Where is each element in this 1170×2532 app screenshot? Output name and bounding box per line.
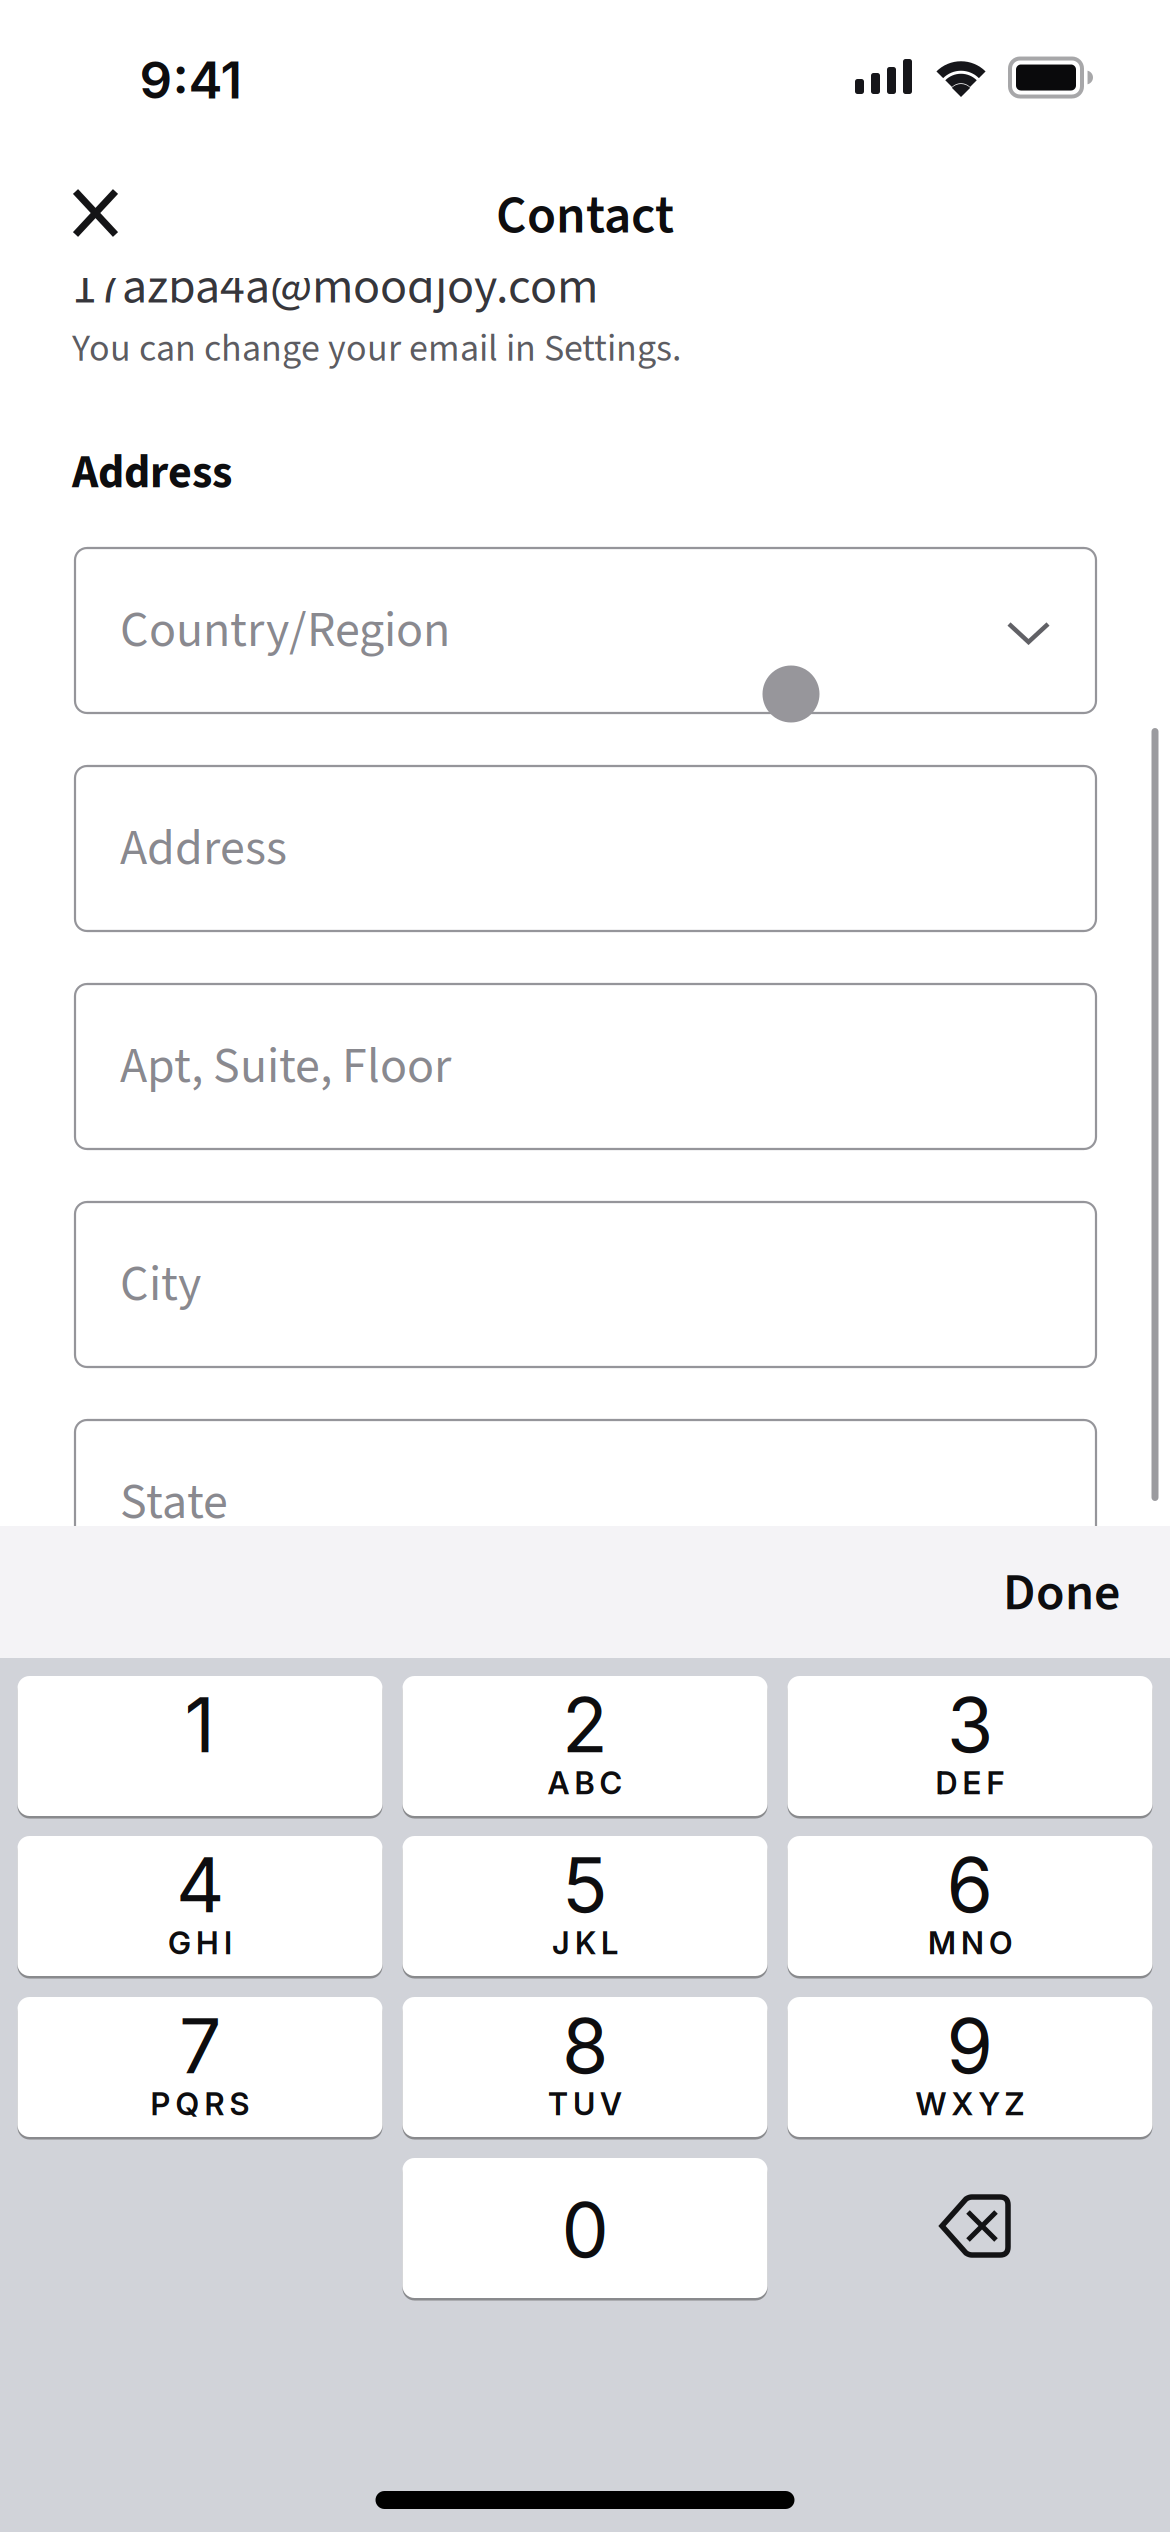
staticText: Address: [72, 440, 232, 506]
button[interactable]: 5: [402, 1833, 767, 1978]
button[interactable]: Done: [840, 1533, 1120, 1653]
staticText: 8: [562, 2001, 608, 2091]
staticText: Country/Region: [120, 595, 450, 666]
button[interactable]: State: [75, 1420, 1096, 1585]
button[interactable]: 4: [17, 1833, 382, 1978]
staticText: JKL: [552, 1924, 618, 1962]
staticText: 5: [562, 1840, 608, 1930]
staticText: DEF: [935, 1764, 1004, 1802]
staticText: 9:41: [139, 49, 242, 111]
button[interactable]: 3: [787, 1673, 1152, 1818]
button[interactable]: Country/Region: [75, 548, 1096, 713]
staticText: 9: [946, 2001, 993, 2091]
staticText: 2: [562, 1680, 608, 1770]
staticText: 17azba4a@moodjoy.com: [72, 251, 598, 323]
staticText: 0: [561, 2185, 608, 2275]
staticText: 4: [176, 1840, 224, 1930]
button[interactable]: Delete: [787, 2158, 1152, 2298]
staticText: You can change your email in Settings.: [72, 322, 681, 376]
staticText: 1: [184, 1680, 215, 1770]
button[interactable]: Apt, Suite, Floor: [75, 984, 1096, 1149]
staticText: TUV: [548, 2085, 622, 2123]
staticText: WXYZ: [915, 2085, 1024, 2123]
button[interactable]: 0: [402, 2155, 767, 2300]
button[interactable]: 1: [17, 1673, 382, 1818]
staticText: State: [120, 1467, 228, 1538]
button[interactable]: Address: [75, 766, 1096, 931]
button[interactable]: City: [75, 1202, 1096, 1367]
button[interactable]: 8: [402, 1994, 767, 2139]
staticText: Address: [120, 813, 287, 884]
staticText: GHI: [168, 1924, 232, 1962]
button[interactable]: 7: [17, 1994, 382, 2139]
staticText: Apt, Suite, Floor: [120, 1031, 451, 1102]
staticText: Contact: [496, 178, 674, 254]
staticText: PQRS: [150, 2085, 249, 2123]
staticText: 7: [179, 2001, 221, 2091]
staticText: 3: [947, 1680, 993, 1770]
button[interactable]: Close: [50, 168, 140, 258]
staticText: 6: [946, 1840, 993, 1930]
button[interactable]: 6: [787, 1833, 1152, 1978]
staticText: ABC: [547, 1764, 622, 1802]
staticText: City: [120, 1249, 201, 1320]
staticText: Done: [1003, 1556, 1120, 1630]
button[interactable]: 9: [787, 1994, 1152, 2139]
staticText: MNO: [928, 1924, 1012, 1962]
button[interactable]: 2: [402, 1673, 767, 1818]
